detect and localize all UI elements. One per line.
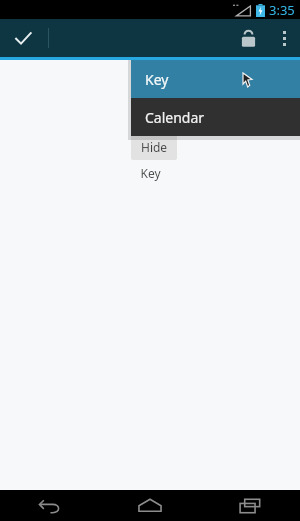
button[interactable]: Calendar <box>131 98 300 136</box>
button[interactable]: Home <box>100 490 200 521</box>
button[interactable]: More options <box>268 19 300 57</box>
button[interactable]: Lock <box>228 19 268 57</box>
staticText: Key <box>140 165 161 181</box>
button[interactable]: Key <box>131 60 300 98</box>
staticText: 3:35 <box>269 1 295 19</box>
button[interactable]: Done <box>0 19 46 57</box>
button[interactable]: Hide <box>131 133 177 160</box>
button[interactable]: Back <box>0 490 100 521</box>
button[interactable]: Recent apps <box>200 490 300 521</box>
staticText: Hide <box>141 139 168 155</box>
staticText: Key <box>145 70 169 89</box>
staticText: Calendar <box>145 108 205 127</box>
